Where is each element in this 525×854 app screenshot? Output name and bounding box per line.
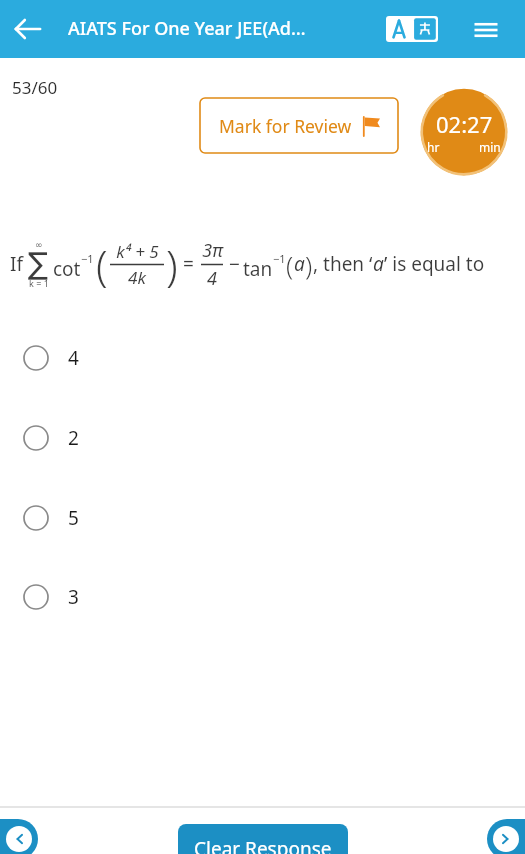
staticText: ( [96,236,108,293]
staticText: Mark for Review [219,114,352,138]
button[interactable]: 2 [22,416,502,460]
staticText: ’ is equal to [384,251,485,277]
button[interactable]: Previous question [0,819,38,854]
staticText: ∞ [35,240,43,250]
staticText: 5 [68,505,79,531]
staticText: a [373,251,384,277]
button[interactable]: Mark for Review [199,97,399,154]
staticText: min [479,139,501,155]
staticText: 3π [202,238,223,263]
staticText: 3 [68,584,79,610]
staticText: = [183,251,194,277]
button[interactable]: 4 [22,336,502,380]
button[interactable]: Clear Response [178,824,348,854]
button[interactable]: Back [12,13,44,45]
staticText: a [294,251,305,277]
staticText: , then ‘ [313,251,373,277]
staticText: 4 [68,345,79,371]
staticText: tan [243,256,273,282]
staticText: −1 [81,251,94,266]
staticText: If [10,251,23,277]
staticText: 4k [128,266,146,289]
staticText: ∑ [28,246,49,281]
button[interactable]: Time remaining [416,84,512,180]
staticText: k⁴ + 5 [116,240,159,263]
button[interactable]: 3 [22,575,502,619]
staticText: cot [53,256,81,282]
button[interactable]: Translate [384,14,440,44]
staticText: ) [305,247,313,282]
staticText: ) [166,236,178,293]
staticText: −1 [273,251,286,266]
staticText: − [229,251,240,277]
staticText: 2 [68,425,79,451]
button[interactable]: 5 [22,496,502,540]
staticText: ( [286,247,294,282]
staticText: 02:27 [436,109,493,139]
staticText: 4 [207,266,217,291]
button[interactable]: Next question [487,819,525,854]
staticText: Clear Response [194,836,332,854]
button[interactable]: Menu [470,14,502,46]
staticText: AIATS For One Year JEE(Ad… [68,16,306,41]
staticText: k = 1 [29,277,49,289]
staticText: hr [427,139,440,155]
staticText: 53/60 [12,76,58,99]
